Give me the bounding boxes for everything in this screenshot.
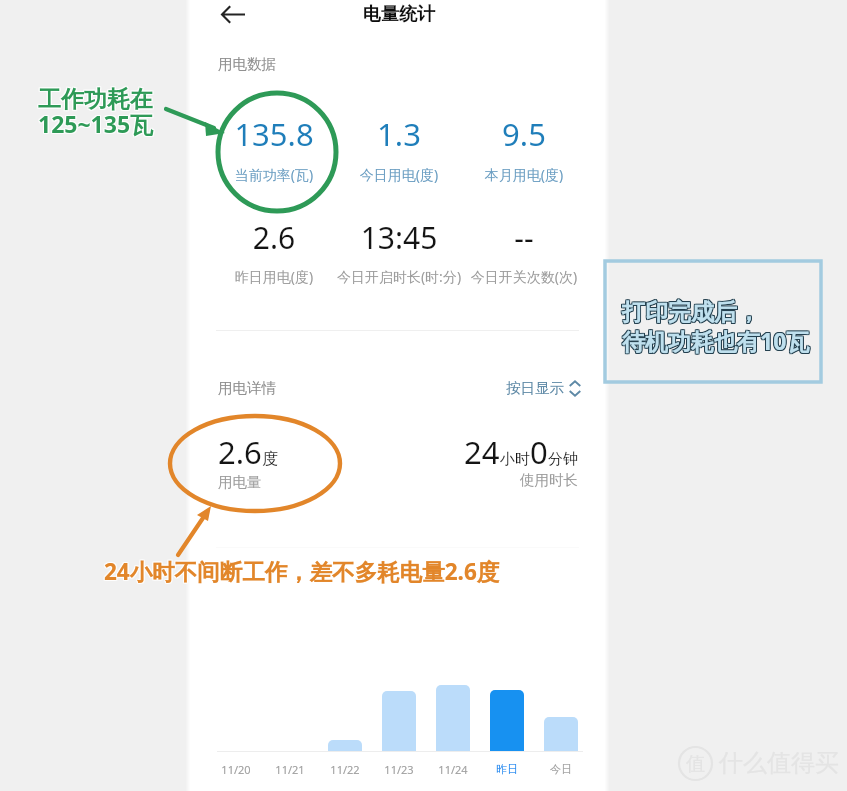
staticText: 打印完成后， [621, 298, 759, 327]
staticText: 今日 [531, 762, 591, 776]
staticText: 打印完成后， [623, 298, 761, 327]
staticText: 当前功率(瓦) [199, 165, 349, 184]
staticText: 待机功耗也有10瓦 [623, 324, 811, 355]
staticText: 使用时长 [390, 471, 578, 489]
staticText: 工作功耗在 [39, 85, 154, 114]
staticText: 24小时不间断工作，差不多耗电量2.6度 [104, 556, 500, 587]
staticText: 24小时不间断工作，差不多耗电量2.6度 [105, 555, 501, 586]
staticText: 24小时不间断工作，差不多耗电量2.6度 [103, 556, 499, 587]
button[interactable] [209, 660, 263, 778]
staticText: 11/23 [369, 762, 429, 777]
button[interactable]: 按日显示 [506, 379, 581, 397]
staticText: 分钟 [548, 450, 578, 469]
staticText: 135.8 [199, 113, 349, 155]
staticText: 电量统计 [309, 3, 489, 26]
staticText: 125~135瓦 [39, 109, 155, 140]
staticText: 9.5 [449, 113, 599, 155]
staticText: 125~135瓦 [39, 108, 155, 139]
staticText: 今日开启时长(时:分) [314, 267, 484, 286]
staticText: 待机功耗也有10瓦 [621, 325, 809, 356]
staticText: 13:45 [324, 217, 474, 258]
staticText: 125~135瓦 [38, 108, 154, 139]
button[interactable] [263, 660, 317, 778]
button[interactable] [534, 660, 588, 778]
staticText: 打印完成后， [622, 299, 760, 328]
staticText: 工作功耗在 [38, 86, 153, 115]
staticText: 度 [262, 449, 278, 469]
staticText: 工作功耗在 [37, 85, 152, 114]
staticText: 125~135瓦 [39, 107, 155, 138]
staticText: 11/21 [260, 762, 320, 777]
staticText: 待机功耗也有10瓦 [623, 325, 811, 356]
staticText: 打印完成后， [623, 299, 761, 328]
staticText: 打印完成后， [622, 298, 760, 327]
staticText: -- [449, 217, 599, 258]
staticText: 11/22 [315, 762, 375, 777]
staticText: 24小时不间断工作，差不多耗电量2.6度 [104, 557, 500, 588]
staticText: 待机功耗也有10瓦 [621, 326, 809, 357]
staticText: 待机功耗也有10瓦 [623, 326, 811, 357]
staticText: 用电数据 [218, 55, 276, 73]
button[interactable] [480, 660, 534, 778]
staticText: 24小时不间断工作，差不多耗电量2.6度 [105, 556, 501, 587]
button[interactable] [372, 660, 426, 778]
staticText: 24小时不间断工作，差不多耗电量2.6度 [103, 555, 499, 586]
staticText: 125~135瓦 [37, 108, 153, 139]
staticText: 今日开关次数(次) [444, 267, 604, 286]
staticText: 24小时不间断工作，差不多耗电量2.6度 [105, 557, 501, 588]
staticText: 24小时不间断工作，差不多耗电量2.6度 [103, 557, 499, 588]
staticText: 打印完成后， [623, 297, 761, 326]
staticText: 待机功耗也有10瓦 [622, 325, 810, 356]
staticText: 昨日用电(度) [199, 267, 349, 286]
staticText: 今日用电(度) [324, 165, 474, 184]
staticText: 工作功耗在 [38, 84, 153, 113]
staticText: 工作功耗在 [37, 84, 152, 113]
staticText: 值 [686, 752, 705, 776]
staticText: 打印完成后， [621, 297, 759, 326]
button[interactable] [426, 660, 480, 778]
staticText: 工作功耗在 [39, 84, 154, 113]
staticText: 按日显示 [506, 379, 564, 397]
staticText: 11/20 [206, 762, 266, 777]
staticText: 待机功耗也有10瓦 [621, 324, 809, 355]
staticText: 24 [464, 431, 500, 473]
staticText: 125~135瓦 [38, 109, 154, 140]
staticText: 工作功耗在 [37, 86, 152, 115]
staticText: 1.3 [324, 113, 474, 155]
staticText: 2.6 [199, 217, 349, 258]
staticText: 用电详情 [218, 379, 276, 397]
staticText: 本月用电(度) [449, 165, 599, 184]
staticText: 用电量 [218, 473, 262, 491]
staticText: 什么值得买 [719, 748, 839, 778]
button[interactable]: Back [218, 1, 248, 31]
staticText: 125~135瓦 [37, 109, 153, 140]
staticText: 125~135瓦 [38, 107, 154, 138]
staticText: 11/24 [423, 762, 483, 777]
staticText: 工作功耗在 [38, 85, 153, 114]
button[interactable] [318, 660, 372, 778]
staticText: 125~135瓦 [37, 107, 153, 138]
staticText: 待机功耗也有10瓦 [622, 324, 810, 355]
staticText: 昨日 [477, 762, 537, 776]
staticText: 小时 [500, 450, 530, 469]
staticText: 打印完成后， [622, 297, 760, 326]
staticText: 工作功耗在 [39, 86, 154, 115]
staticText: 待机功耗也有10瓦 [622, 326, 810, 357]
staticText: 打印完成后， [621, 299, 759, 328]
staticText: 0 [530, 431, 548, 473]
staticText: 2.6 [218, 431, 262, 473]
staticText: 24小时不间断工作，差不多耗电量2.6度 [104, 555, 500, 586]
